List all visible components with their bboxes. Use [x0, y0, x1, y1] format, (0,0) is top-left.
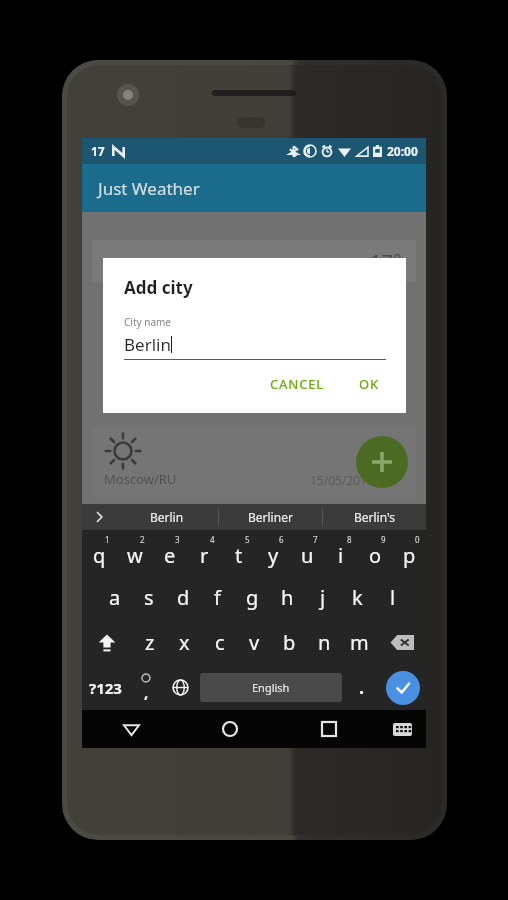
staticText: t [235, 542, 243, 569]
button[interactable]: Switch keyboard [378, 710, 426, 748]
staticText: f [214, 584, 221, 611]
staticText: 1 [105, 534, 110, 545]
staticText: k [352, 584, 363, 611]
staticText: 2 [140, 534, 145, 545]
button[interactable]: i [324, 530, 358, 575]
staticText: City name [124, 315, 171, 329]
button[interactable]: Shift [82, 620, 132, 665]
staticText: 15/05/2017 7:3 [310, 472, 394, 488]
staticText: u [301, 542, 314, 569]
button[interactable]: ?123 [82, 665, 129, 710]
button[interactable]: w [117, 530, 152, 575]
staticText: 17° [370, 248, 402, 275]
staticText: , [144, 682, 149, 702]
button[interactable]: Berlin's [323, 504, 426, 530]
staticText: . [359, 675, 365, 700]
button[interactable]: Backspace [377, 620, 426, 665]
staticText: English [252, 680, 290, 695]
button[interactable]: Recents [279, 710, 378, 748]
button[interactable]: o [358, 530, 392, 575]
staticText: e [164, 542, 176, 569]
button[interactable]: Moscow/RU [92, 426, 416, 498]
button[interactable]: u [290, 530, 324, 575]
staticText: Just Weather [98, 177, 200, 200]
staticText: a [109, 584, 121, 611]
button[interactable]: d [166, 575, 200, 620]
staticText: Berlin's [354, 509, 396, 525]
button[interactable]: q [82, 530, 117, 575]
button[interactable]: Berlin [116, 504, 218, 530]
button[interactable]: e [152, 530, 187, 575]
button[interactable]: g [235, 575, 270, 620]
staticText: 9 [381, 534, 386, 545]
staticText: v [249, 629, 260, 656]
button[interactable]: b [272, 620, 307, 665]
button[interactable]: CANCEL [262, 369, 333, 399]
staticText: c [215, 629, 225, 656]
staticText: Berliner [248, 509, 293, 525]
staticText: d [177, 584, 190, 611]
button[interactable]: Home [180, 710, 279, 748]
staticText: 17 [91, 143, 105, 159]
staticText: 20:00 [387, 143, 418, 159]
button[interactable]: h [270, 575, 305, 620]
button[interactable]: Back [82, 710, 180, 748]
button[interactable]: English [200, 673, 342, 702]
staticText: y [268, 542, 279, 569]
staticText: o [369, 542, 382, 569]
staticText: z [145, 629, 155, 656]
button[interactable]: . [345, 665, 379, 710]
button[interactable]: n [307, 620, 342, 665]
staticText: s [144, 584, 154, 611]
button[interactable]: Add city [356, 436, 408, 488]
staticText: j [320, 584, 326, 611]
staticText: b [283, 629, 296, 656]
staticText: x [179, 629, 190, 656]
button[interactable]: j [305, 575, 340, 620]
staticText: 7 [313, 534, 318, 545]
button[interactable]: Done [386, 671, 420, 705]
button[interactable]: f [200, 575, 235, 620]
button[interactable]: y [256, 530, 290, 575]
staticText: OK [359, 375, 380, 393]
staticText: i [338, 542, 344, 569]
button[interactable]: x [167, 620, 202, 665]
button[interactable]: OK [351, 369, 388, 399]
staticText: 0 [415, 534, 420, 545]
staticText: m [350, 629, 369, 656]
staticText: n [318, 629, 331, 656]
staticText: 6 [279, 534, 284, 545]
button[interactable]: z [132, 620, 167, 665]
staticText: 8 [347, 534, 352, 545]
button[interactable]: Change language [163, 665, 197, 710]
staticText: r [200, 542, 209, 569]
staticText: Berlin [124, 333, 171, 356]
button[interactable]: v [237, 620, 272, 665]
staticText: 5 [245, 534, 250, 545]
staticText: p [403, 542, 416, 569]
button[interactable]: Berliner [219, 504, 322, 530]
button[interactable]: Comma and emoji [129, 665, 163, 710]
button[interactable]: Expand suggestions [82, 504, 116, 530]
staticText: Berlin [150, 509, 184, 525]
staticText: Moscow/RU [104, 470, 177, 488]
staticText: 3 [175, 534, 180, 545]
staticText: 4 [210, 534, 215, 545]
button[interactable]: k [340, 575, 375, 620]
button[interactable]: r [187, 530, 222, 575]
button[interactable]: p [392, 530, 426, 575]
staticText: w [127, 542, 143, 569]
button[interactable]: l [375, 575, 410, 620]
staticText: h [281, 584, 294, 611]
staticText: g [246, 584, 259, 611]
staticText: l [390, 584, 396, 611]
button[interactable]: m [342, 620, 377, 665]
staticText: ?123 [89, 678, 122, 698]
staticText: Add city [124, 276, 193, 299]
button[interactable]: t [222, 530, 256, 575]
staticText: CANCEL [270, 375, 325, 393]
staticText: q [93, 542, 106, 569]
button[interactable]: c [202, 620, 237, 665]
button[interactable]: a [98, 575, 132, 620]
button[interactable]: s [132, 575, 166, 620]
